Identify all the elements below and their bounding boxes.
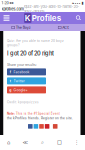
staticText: This is the #1 Special Event <box>16 112 60 115</box>
button[interactable]: g <box>7 86 46 93</box>
button[interactable]: Share <box>17 135 34 150</box>
button[interactable]: Search <box>73 12 84 24</box>
staticText: g <box>9 88 11 92</box>
staticText: t <box>10 79 11 83</box>
button[interactable]: Tabs <box>51 135 68 150</box>
button[interactable]: kprofiles.com <box>0 6 85 12</box>
staticText: /quiz-are-you-able-to-name-20-boyz-group… <box>23 4 79 14</box>
staticText: the kProfiles friends. Register on the s… <box>7 116 73 120</box>
staticText: □ <box>57 139 62 146</box>
staticText: groups? <box>7 43 20 47</box>
button[interactable]: Facebook <box>28 124 33 129</box>
staticText: ≪ <box>22 139 28 146</box>
button[interactable]: Search <box>34 135 51 150</box>
staticText: ▮ <box>81 1 83 5</box>
staticText: Google+ <box>13 88 27 92</box>
staticText: Facebook <box>13 70 29 74</box>
staticText: 1:20 <box>1 1 8 5</box>
staticText: Twitter <box>13 79 24 83</box>
button[interactable]: f <box>7 68 46 75</box>
staticText: f <box>10 70 11 74</box>
button[interactable]: Menu <box>1 12 12 24</box>
button[interactable]: t <box>7 77 46 84</box>
staticText: Profiles <box>32 13 61 23</box>
staticText: K <box>25 13 31 23</box>
staticText: ACE <box>62 25 69 30</box>
staticText: Note: <box>7 112 15 115</box>
staticText: Quiz: Are you able to name 20 boyz <box>7 39 64 43</box>
staticText: Share your results: <box>7 63 37 67</box>
staticText: ◂▪▪▪▪ <box>72 1 81 5</box>
button[interactable]: More <box>68 135 85 150</box>
button[interactable]: Email <box>53 124 57 129</box>
button[interactable]: Home <box>0 135 17 150</box>
staticText: ●● <box>9 1 13 5</box>
staticText: kprofiles.com <box>1 7 23 11</box>
button[interactable]: The Boyz <box>0 24 42 31</box>
staticText: ⌕ <box>41 140 44 145</box>
staticText: The Boyz <box>16 25 31 30</box>
button[interactable]: Twitter <box>34 124 38 129</box>
staticText: Credit: kpopquizzes <box>7 100 39 104</box>
staticText: I got 20 of 20 right <box>7 50 54 57</box>
button[interactable]: ACE <box>42 24 85 31</box>
staticText: ⌂ <box>7 139 10 146</box>
button[interactable]: Pinterest <box>45 124 49 129</box>
staticText: ⋮ <box>74 139 79 146</box>
button[interactable]: Google Plus <box>39 124 44 129</box>
